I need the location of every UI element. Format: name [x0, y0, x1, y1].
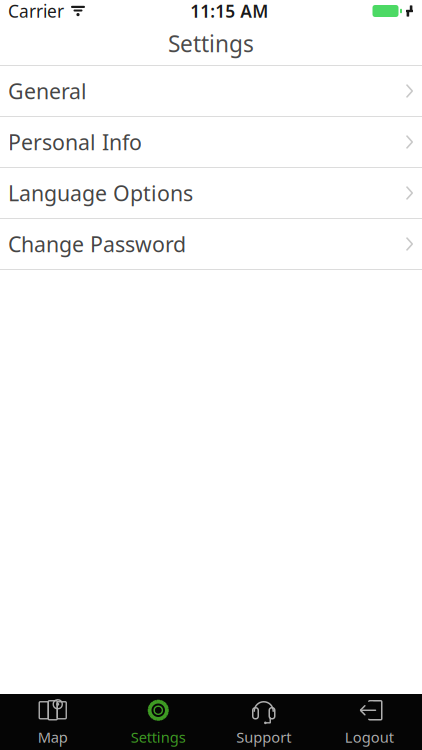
- staticText: Language Options: [8, 179, 193, 207]
- button[interactable]: Personal Info: [0, 117, 422, 168]
- staticText: 11:15 AM: [190, 0, 268, 22]
- staticText: General: [8, 77, 87, 105]
- staticText: Settings: [168, 28, 254, 58]
- staticText: Settings: [131, 727, 186, 747]
- button[interactable]: Logout: [316, 694, 422, 750]
- button[interactable]: Language Options: [0, 168, 422, 219]
- button[interactable]: Map: [0, 694, 105, 750]
- staticText: Support: [236, 727, 291, 747]
- button[interactable]: General: [0, 66, 422, 117]
- button[interactable]: Settings: [105, 694, 211, 750]
- staticText: Carrier: [8, 0, 64, 22]
- staticText: Logout: [345, 727, 394, 747]
- staticText: Change Password: [8, 230, 186, 258]
- button[interactable]: Support: [211, 694, 316, 750]
- button[interactable]: Change Password: [0, 219, 422, 270]
- staticText: Personal Info: [8, 128, 142, 156]
- staticText: Map: [38, 727, 68, 747]
